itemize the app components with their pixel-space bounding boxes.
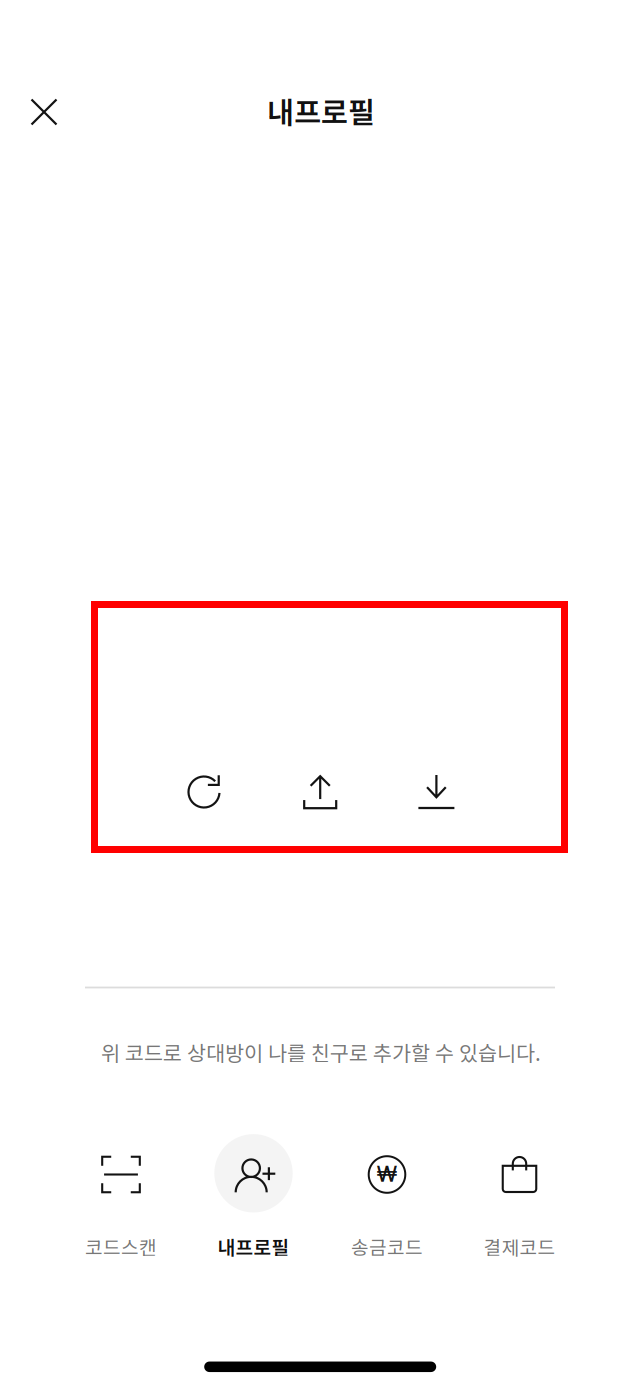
- button[interactable]: Close: [8, 76, 80, 148]
- button[interactable]: My profile: [187, 1128, 319, 1278]
- staticText: ₩: [376, 1161, 397, 1187]
- button[interactable]: Scan code: [55, 1128, 187, 1278]
- button[interactable]: Payment code: [453, 1128, 585, 1278]
- staticText: 코드스캔: [85, 1233, 157, 1260]
- button[interactable]: Save code: [384, 743, 488, 839]
- button[interactable]: Transfer code: [321, 1128, 453, 1278]
- button[interactable]: Refresh code: [152, 744, 256, 840]
- staticText: 결제코드: [483, 1233, 555, 1260]
- staticText: 내프로필: [217, 1233, 289, 1260]
- staticText: 내프로필: [267, 89, 375, 132]
- button[interactable]: Share code: [268, 744, 372, 840]
- staticText: 위 코드로 상대방이 나를 친구로 추가할 수 있습니다.: [101, 1037, 541, 1067]
- staticText: 송금코드: [351, 1233, 423, 1260]
